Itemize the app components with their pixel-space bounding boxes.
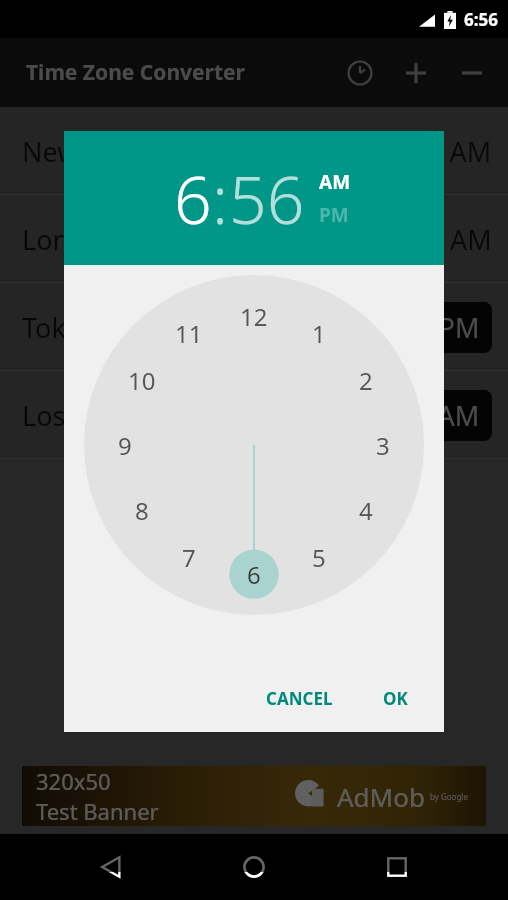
button[interactable]: Hour 8 xyxy=(84,275,424,615)
staticText: Tokyo xyxy=(22,309,96,346)
staticText: 320x50 xyxy=(36,766,111,796)
staticText: 12 xyxy=(240,300,268,333)
button[interactable]: Recents xyxy=(365,835,429,899)
button[interactable]: Remove xyxy=(444,45,500,101)
button[interactable]: PM xyxy=(319,202,349,228)
button[interactable]: Hour 11 xyxy=(84,275,424,615)
staticText: 3:56 AM xyxy=(377,397,480,434)
button[interactable]: London xyxy=(0,195,508,283)
staticText: 11:56 AM xyxy=(374,221,492,258)
button[interactable]: Back xyxy=(79,835,143,899)
button[interactable]: New York xyxy=(0,107,508,195)
staticText: 6:56 xyxy=(464,8,498,31)
staticText: 3 xyxy=(376,429,390,462)
button[interactable]: AM xyxy=(319,169,351,195)
button[interactable]: OK xyxy=(369,679,422,718)
staticText: 6 xyxy=(247,558,261,591)
button[interactable]: 56 xyxy=(229,153,305,243)
button[interactable]: Tokyo xyxy=(0,283,508,371)
button[interactable]: Los Angeles xyxy=(0,371,508,459)
button[interactable]: Hour 10 xyxy=(84,275,424,615)
staticText: CANCEL xyxy=(266,687,333,710)
button[interactable]: Hour 6 xyxy=(84,275,424,615)
button[interactable]: Hour 3 xyxy=(84,275,424,615)
button[interactable]: Hour 5 xyxy=(84,275,424,615)
staticText: 8 xyxy=(135,494,149,527)
staticText: Test Banner xyxy=(36,796,159,826)
button[interactable]: Hour 2 xyxy=(84,275,424,615)
staticText: 10 xyxy=(128,364,156,397)
button[interactable]: 6 xyxy=(174,153,212,243)
staticText: AdMob xyxy=(337,779,425,814)
staticText: 6:56 AM xyxy=(389,133,492,170)
button[interactable]: CANCEL xyxy=(252,679,347,718)
staticText: : xyxy=(212,153,229,243)
staticText: New York xyxy=(22,133,142,170)
staticText: 6 xyxy=(174,153,212,243)
button[interactable]: Hour 4 xyxy=(84,275,424,615)
staticText: Time Zone Converter xyxy=(26,58,246,87)
button[interactable]: Hour 9 xyxy=(84,275,424,615)
staticText: 56 xyxy=(229,153,305,243)
button[interactable]: Set time xyxy=(332,45,388,101)
staticText: OK xyxy=(383,687,408,710)
button[interactable]: Hour 1 xyxy=(84,275,424,615)
button[interactable]: Add xyxy=(388,45,444,101)
staticText: 11 xyxy=(175,317,203,350)
staticText: 7 xyxy=(182,541,196,574)
staticText: PM xyxy=(319,202,349,228)
staticText: Los Angeles xyxy=(22,397,174,434)
staticText: 5 xyxy=(312,541,326,574)
staticText: 4 xyxy=(359,494,373,527)
staticText: AM xyxy=(319,169,351,195)
button[interactable]: Home xyxy=(222,835,286,899)
staticText: 9 xyxy=(118,429,132,462)
staticText: by Google xyxy=(430,791,468,802)
button[interactable]: Hour 12 xyxy=(84,275,424,615)
staticText: 1 xyxy=(312,317,326,350)
button[interactable]: Advertisement xyxy=(22,766,486,826)
staticText: 2 xyxy=(359,364,373,397)
staticText: 8:56 PM xyxy=(378,309,480,346)
button[interactable]: Hour 7 xyxy=(84,275,424,615)
staticText: London xyxy=(22,221,119,258)
